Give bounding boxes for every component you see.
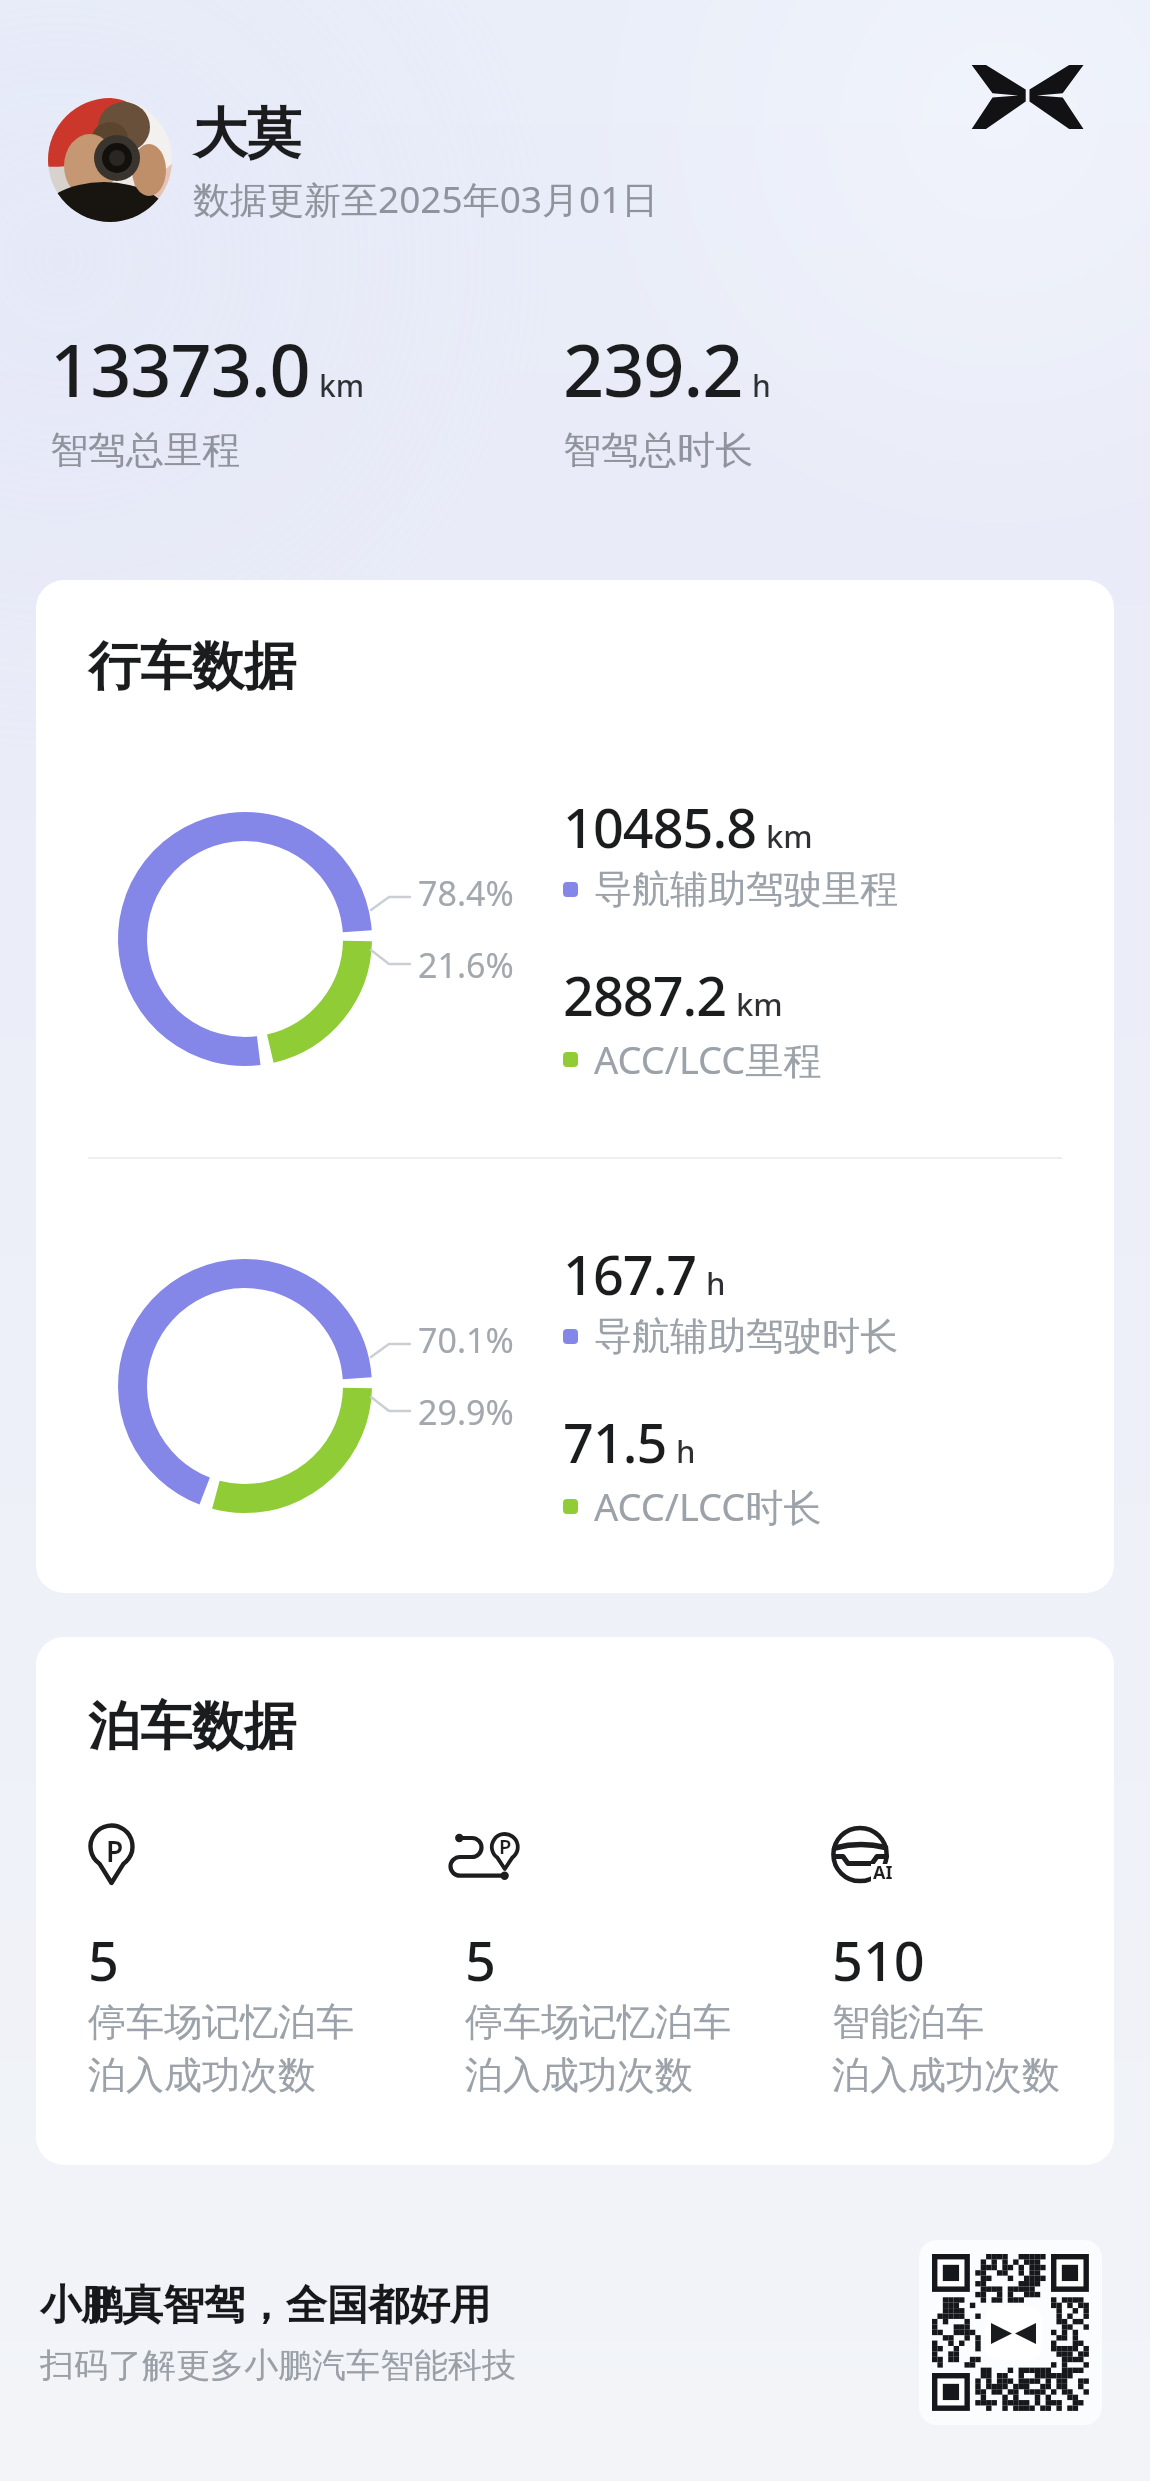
staticText: 70.1% [418,1317,514,1363]
staticText: 5 [465,1923,496,1997]
staticText: 510 [832,1923,925,1997]
staticText: 小鹏真智驾，全国都好用 [40,2280,491,2332]
staticText: h [706,1262,726,1304]
staticText: km [319,365,365,406]
staticText: km [766,815,813,857]
staticText: 泊车数据 [88,1694,296,1760]
staticText: 167.7 [563,1237,697,1311]
staticText: 10485.8 [563,790,757,864]
staticText: 行车数据 [88,634,296,700]
staticText: 数据更新至2025年03月01日 [193,173,659,224]
button[interactable]: 行车数据 [36,580,1114,1593]
staticText: ACC/LCC里程 [594,1033,822,1085]
staticText: P [106,1832,124,1870]
button[interactable] [48,98,172,222]
staticText: 5 [88,1923,119,1997]
staticText: 智能泊车 泊入成功次数 [832,1998,1060,2099]
staticText: 停车场记忆泊车 泊入成功次数 [88,1998,354,2099]
staticText: h [752,365,771,406]
staticText: 智驾总时长 [563,426,753,474]
staticText: 21.6% [418,942,514,988]
staticText: 大莫 [193,100,301,168]
button[interactable]: 泊车数据 [36,1637,1114,2165]
button[interactable] [919,2240,1102,2425]
staticText: 导航辅助驾驶时长 [594,1312,898,1360]
staticText: P [499,1833,512,1860]
staticText: 71.5 [563,1405,667,1479]
staticText: 29.9% [418,1389,514,1435]
button[interactable] [971,64,1085,130]
staticText: 239.2 [563,320,743,418]
staticText: 停车场记忆泊车 泊入成功次数 [465,1998,731,2099]
staticText: ACC/LCC时长 [594,1480,822,1532]
staticText: 智驾总里程 [50,426,240,474]
staticText: 78.4% [418,870,514,916]
staticText: 导航辅助驾驶里程 [594,865,898,913]
staticText: 扫码了解更多小鹏汽车智能科技 [40,2344,516,2387]
staticText: AI [873,1860,893,1885]
staticText: km [736,983,783,1025]
staticText: 2887.2 [563,958,727,1032]
staticText: 13373.0 [50,320,310,418]
staticText: h [676,1430,696,1472]
